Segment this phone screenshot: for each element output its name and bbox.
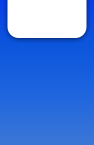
- button[interactable]: Card: [7, 0, 86, 38]
